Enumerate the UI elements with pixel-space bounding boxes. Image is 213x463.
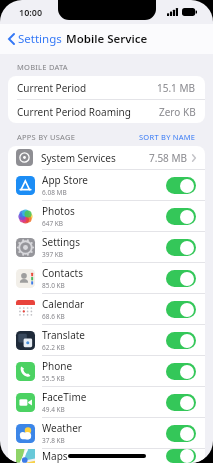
button[interactable]: Current Period Roaming [8, 100, 205, 123]
staticText: Calendar [42, 297, 85, 311]
staticText: Translate [42, 328, 86, 342]
button[interactable]: Toggle mobile data [166, 332, 196, 349]
staticText: 55.5 KB [42, 374, 65, 383]
staticText: Maps [42, 449, 68, 463]
button[interactable]: Toggle mobile data [166, 449, 196, 463]
button[interactable]: Toggle mobile data [166, 425, 196, 442]
staticText: 647 KB [42, 219, 64, 228]
button[interactable]: Toggle mobile data [166, 301, 196, 318]
staticText: System Services [41, 151, 116, 165]
staticText: Settings [42, 235, 81, 249]
staticText: Photos [42, 204, 75, 218]
button[interactable]: System Services [8, 146, 205, 170]
button[interactable]: Phone [8, 356, 205, 387]
button[interactable]: Toggle mobile data [166, 239, 196, 256]
staticText: MOBILE DATA [17, 62, 68, 72]
staticText: Zero KB [159, 105, 196, 119]
staticText: SORT BY NAME [139, 132, 196, 142]
staticText: Settings [18, 31, 62, 47]
staticText: 49.4 KB [42, 405, 65, 414]
staticText: 15.1 MB [157, 81, 196, 95]
button[interactable]: Toggle mobile data [166, 394, 196, 411]
staticText: 397 KB [42, 250, 64, 259]
button[interactable]: SORT BY NAME [139, 132, 196, 142]
staticText: 6.08 MB [42, 188, 67, 197]
button[interactable]: Weather [8, 418, 205, 449]
button[interactable]: App Store [8, 170, 205, 201]
staticText: 10:00 [19, 6, 43, 18]
button[interactable]: Settings [8, 232, 205, 263]
staticText: App Store [42, 173, 89, 187]
staticText: Current Period [17, 81, 87, 95]
button[interactable]: Current Period [8, 76, 205, 100]
button[interactable]: Toggle mobile data [166, 363, 196, 380]
button[interactable]: Photos [8, 201, 205, 232]
staticText: 37.8 KB [42, 436, 65, 445]
button[interactable]: Toggle mobile data [166, 208, 196, 225]
staticText: Mobile Service [66, 31, 148, 47]
staticText: 62.2 KB [42, 343, 65, 352]
staticText: 7.58 MB [149, 151, 188, 165]
button[interactable]: Toggle mobile data [166, 270, 196, 287]
button[interactable]: Calendar [8, 294, 205, 325]
button[interactable]: Toggle mobile data [166, 177, 196, 194]
button[interactable]: Translate [8, 325, 205, 356]
button[interactable]: Maps [8, 449, 205, 463]
button[interactable]: Settings [0, 27, 68, 51]
staticText: Current Period Roaming [17, 105, 131, 119]
button[interactable]: FaceTime [8, 387, 205, 418]
staticText: Contacts [42, 266, 83, 280]
staticText: APPS BY USAGE [17, 132, 76, 142]
button[interactable]: Contacts [8, 263, 205, 294]
staticText: 68.6 KB [42, 312, 65, 321]
staticText: 85.0 KB [42, 281, 65, 290]
staticText: Phone [42, 359, 73, 373]
staticText: Weather [42, 421, 82, 435]
staticText: FaceTime [42, 390, 87, 404]
